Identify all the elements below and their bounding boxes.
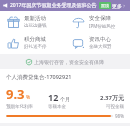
staticText: 2.37万元 [100,94,124,102]
staticText: 边玩边赚钱 [24,23,47,29]
staticText: 预期年化利率 [6,104,33,110]
staticText: 2017年国庆节假期业务受理及值班公告 [10,2,97,9]
staticText: IPM智能风控 [89,23,116,29]
button[interactable]: Latest activities [0,15,65,29]
staticText: 好礼送不停 [24,44,47,50]
staticText: 个人消费贷集合-17092921 [6,73,72,81]
staticText: 个月 [60,96,70,102]
button[interactable]: Safety guarantee [65,15,130,29]
staticText: 金融大视野 [89,44,112,50]
staticText: 资讯中心 [89,36,111,43]
staticText: 最新活动 [24,15,46,22]
staticText: 等额本金 [48,104,66,110]
other: Announcement [3,3,8,8]
staticText: 可投金额 [106,104,124,110]
staticText: 12 [48,91,59,103]
button[interactable]: Points mall [0,36,65,50]
staticText: 上海银行存管，资金安全有保障 [34,59,104,65]
staticText: 更多 [112,3,122,9]
staticText: 9.3 [6,85,25,103]
other: Bank custody shield [26,59,32,65]
staticText: 积分商城 [24,36,46,43]
staticText: 置顶 [101,3,109,8]
staticText: 98% [115,113,124,119]
staticText: % [26,94,31,101]
button[interactable]: 个人消费贷集合-17092921 [0,69,130,123]
button[interactable]: News center [65,36,130,50]
staticText: 安全保障 [89,15,111,22]
button[interactable]: More announcements [111,2,127,10]
button[interactable]: Announcement [0,0,130,11]
